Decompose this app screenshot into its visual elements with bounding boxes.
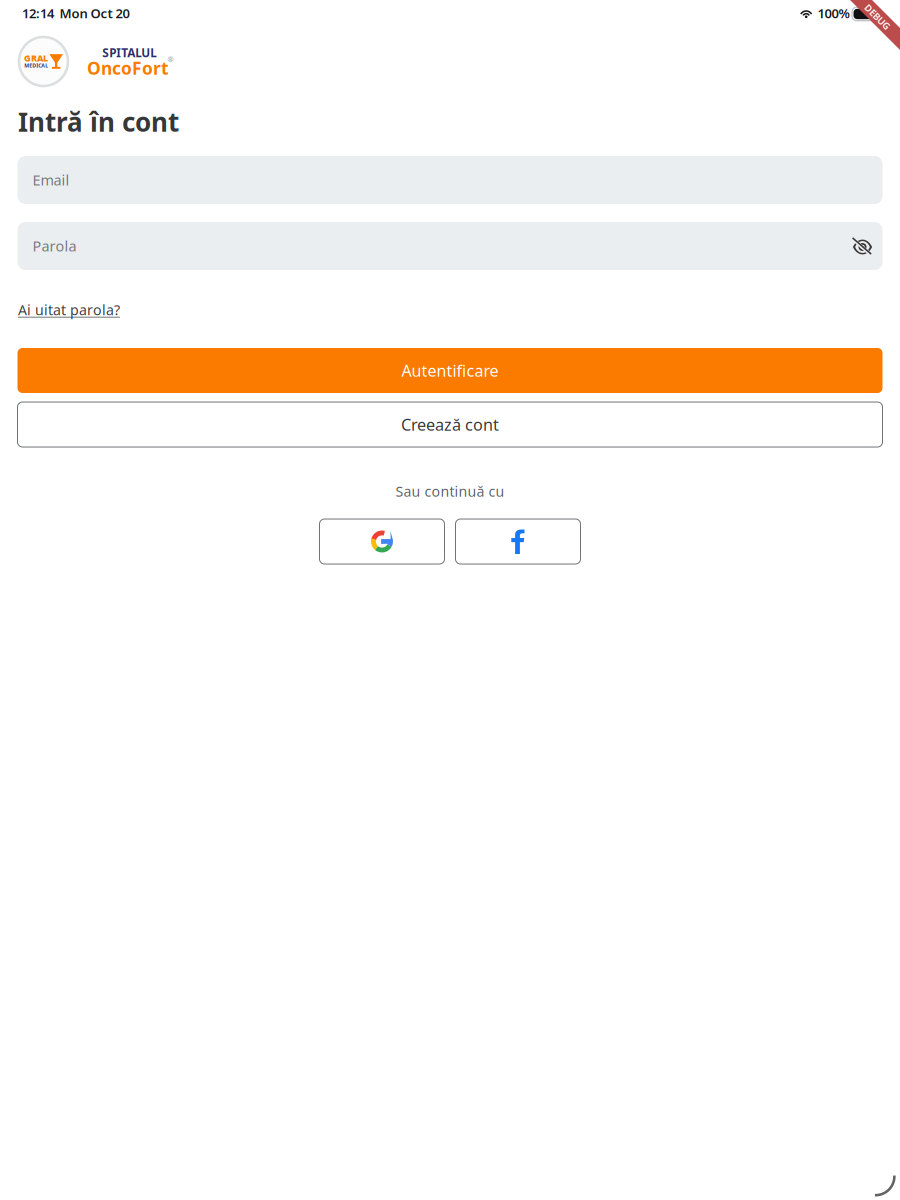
staticText: Ai uitat parola? <box>18 300 120 319</box>
staticText: Parola <box>32 236 76 255</box>
staticText: DEBUG <box>861 10 893 23</box>
staticText: OncoFort <box>87 56 169 79</box>
staticText: Creează cont <box>401 414 499 435</box>
staticText: SPITALUL <box>102 45 157 61</box>
button[interactable]: Autentificare <box>17 348 882 393</box>
button[interactable]: Creează cont <box>17 402 882 447</box>
staticText: ® <box>167 54 173 64</box>
button[interactable]: Show password <box>844 221 872 270</box>
button[interactable]: Ai uitat parola? <box>16 297 122 322</box>
staticText: Autentificare <box>401 360 498 381</box>
staticText: 12:14 <box>22 4 54 22</box>
button[interactable]: Continue with Google <box>319 519 444 564</box>
staticText: GRAL <box>24 52 48 64</box>
staticText: Intră în cont <box>18 104 179 139</box>
staticText: Mon Oct 20 <box>59 4 129 22</box>
staticText: Email <box>32 170 69 189</box>
staticText: 100% <box>817 4 849 22</box>
button[interactable]: Continue with Facebook <box>455 519 580 564</box>
staticText: Sau continuă cu <box>395 482 504 501</box>
staticText: MEDICAL <box>24 62 48 69</box>
